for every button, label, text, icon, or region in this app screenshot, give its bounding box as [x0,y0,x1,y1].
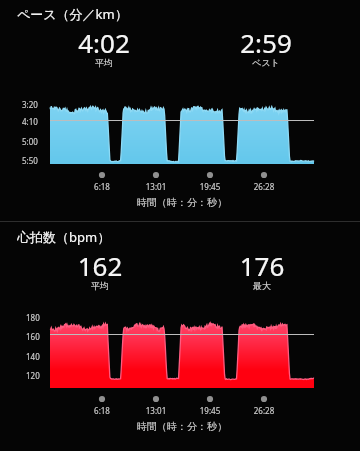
staticText: 26:28 [204,181,324,192]
staticText: 5:50 [22,155,38,166]
staticText: 180 [26,312,40,323]
staticText: 13:01 [96,405,216,416]
staticText: 26:28 [204,405,324,416]
staticText: 平均 [44,57,164,68]
staticText: 160 [26,331,40,342]
staticText: 時間（時：分：秒） [122,196,242,209]
staticText: 6:18 [42,181,162,192]
staticText: 平均 [40,280,160,291]
staticText: ペース（分／km） [17,5,128,23]
staticText: 最大 [202,280,322,291]
staticText: 176 [202,248,322,283]
staticText: 3:20 [22,99,38,110]
staticText: ベスト [206,57,326,68]
staticText: 2:59 [206,25,326,60]
staticText: 6:18 [42,405,162,416]
staticText: 13:01 [96,181,216,192]
staticText: 19:45 [150,405,270,416]
button[interactable]: ペース（分／km） [0,0,360,221]
staticText: 162 [40,248,160,283]
staticText: 120 [26,370,40,381]
staticText: 5:00 [22,136,38,147]
staticText: 4:02 [44,25,164,60]
staticText: 時間（時：分：秒） [122,420,242,433]
staticText: 4:10 [22,116,38,127]
staticText: 140 [26,351,40,362]
staticText: 心拍数（bpm） [17,228,111,246]
button[interactable]: 心拍数（bpm） [0,222,360,451]
staticText: 19:45 [150,181,270,192]
